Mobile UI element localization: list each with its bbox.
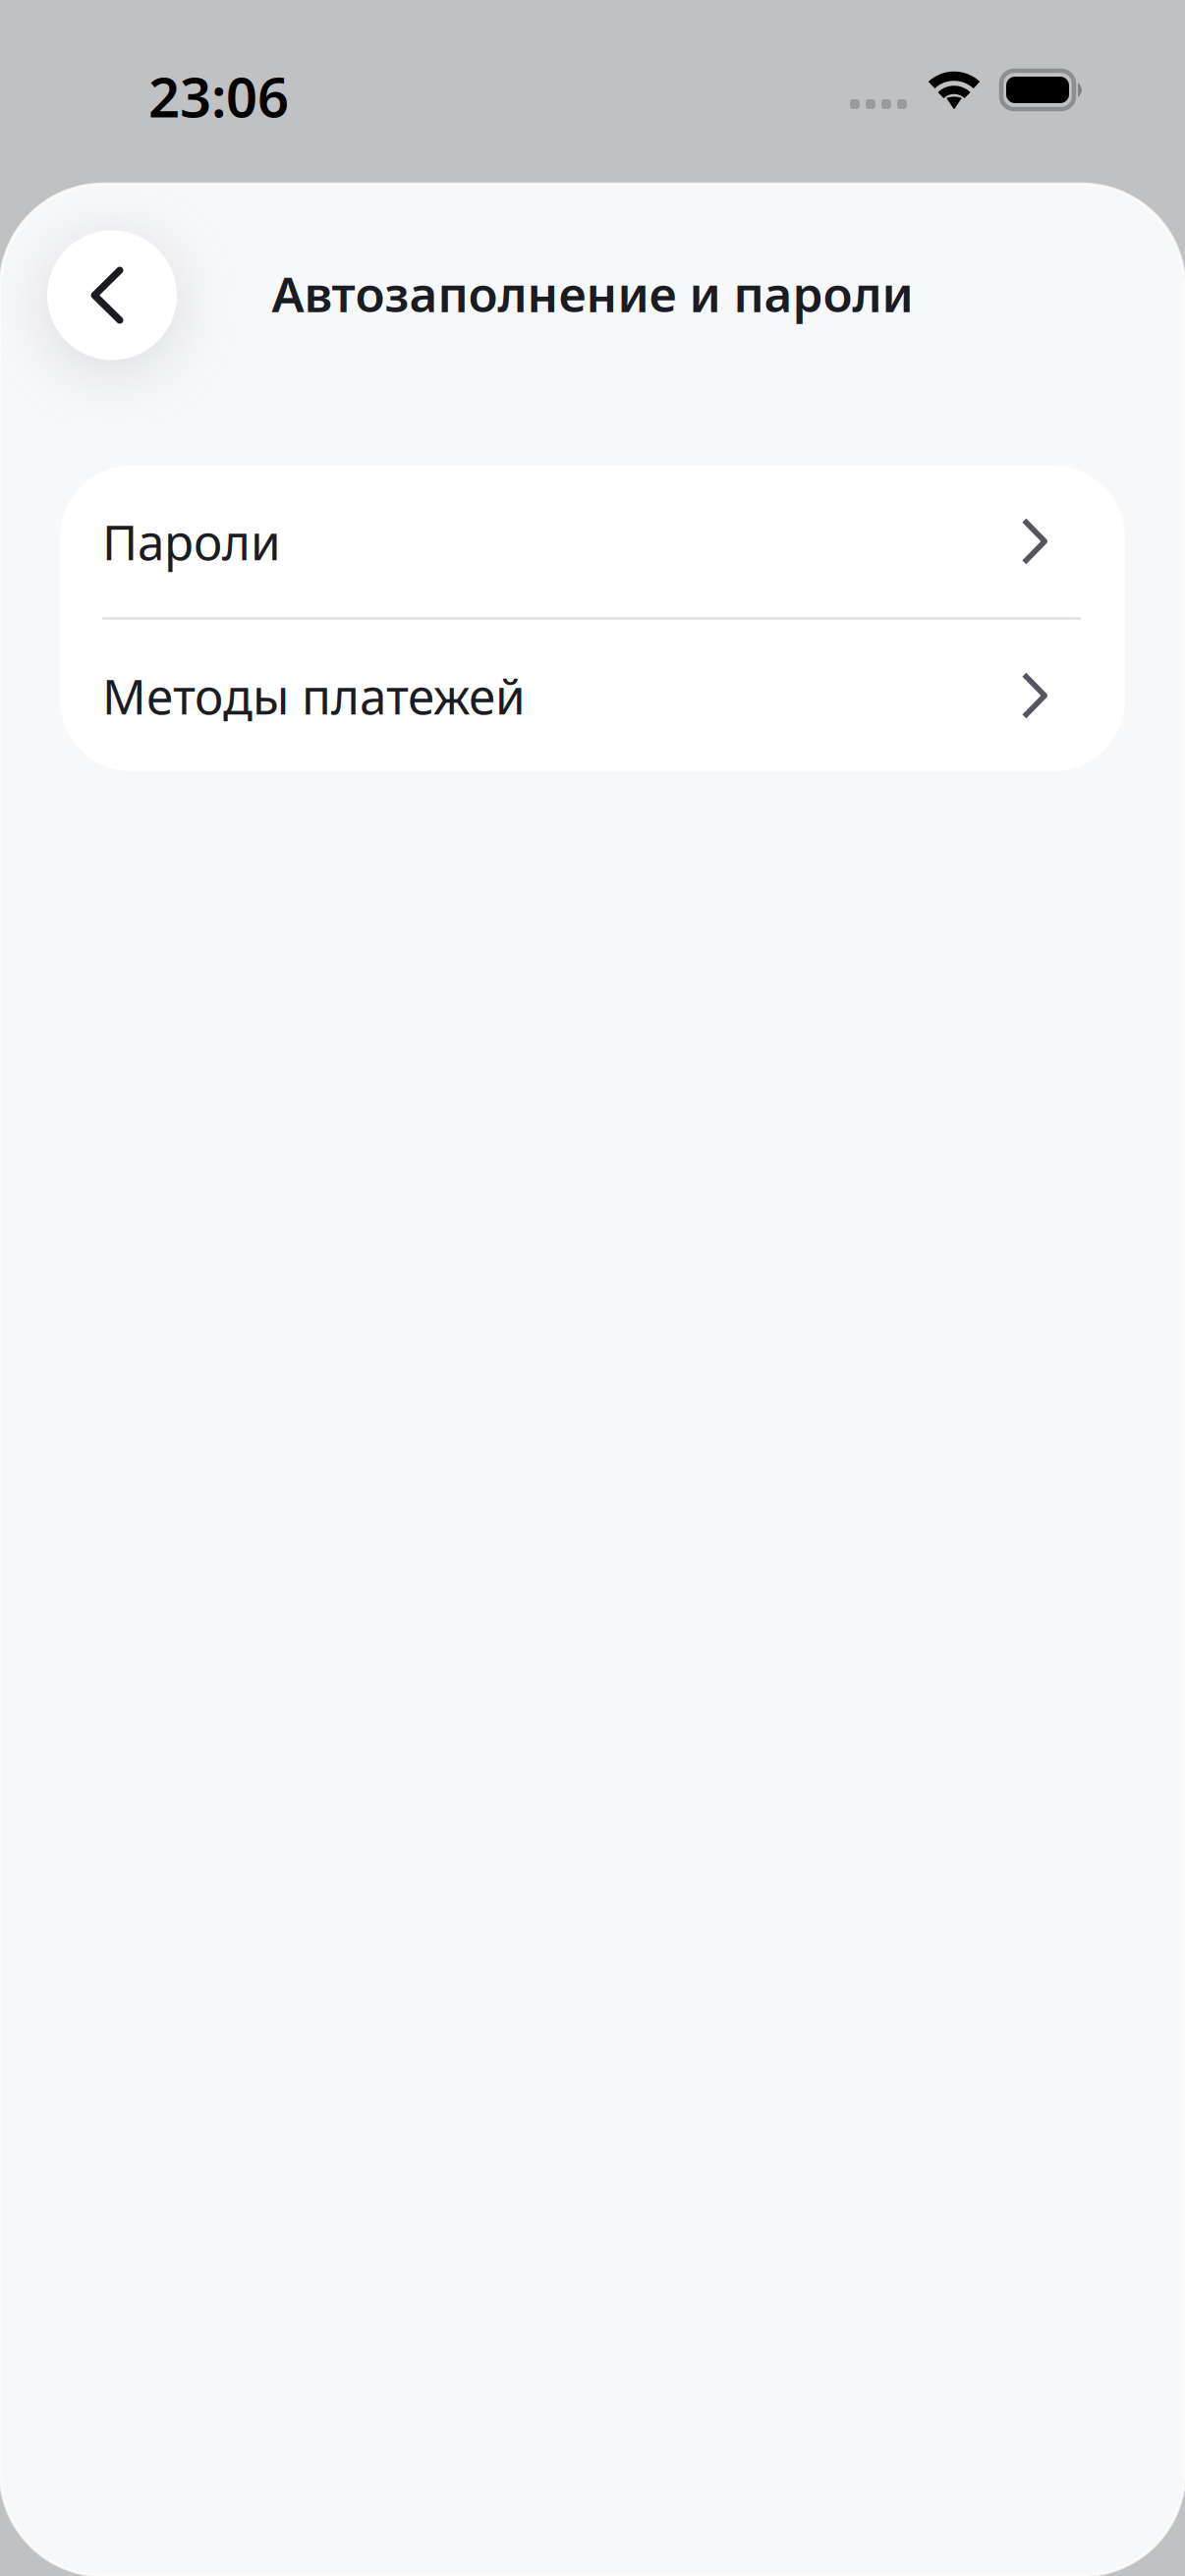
button[interactable]: Пароли <box>60 466 1125 617</box>
staticText: Автозаполнение и пароли <box>272 261 913 325</box>
staticText: 23:06 <box>148 60 289 133</box>
button[interactable]: Назад <box>47 230 177 360</box>
staticText: Методы платежей <box>102 663 526 728</box>
staticText: Пароли <box>102 509 281 573</box>
button[interactable]: Методы платежей <box>60 620 1125 771</box>
